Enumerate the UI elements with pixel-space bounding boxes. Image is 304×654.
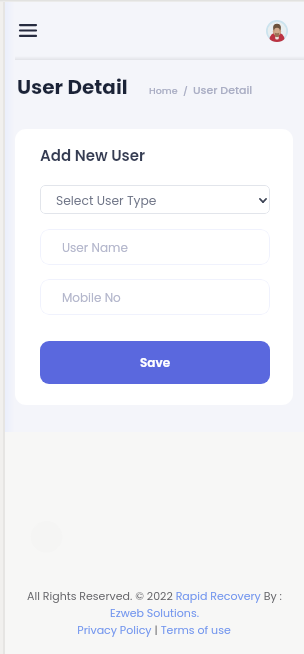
button[interactable]: Open navigation menu	[13, 15, 43, 45]
staticText: Save	[140, 354, 171, 371]
button[interactable]: Ezweb Solutions.	[110, 605, 199, 620]
staticText: User Detail	[17, 73, 128, 101]
button[interactable]: Save	[40, 341, 270, 384]
button[interactable]: User Name	[40, 229, 270, 265]
staticText: User Detail	[193, 82, 253, 97]
button[interactable]: Mobile No	[40, 279, 270, 315]
button[interactable]: Privacy Policy | Terms of use	[77, 622, 231, 637]
staticText: Mobile No	[62, 289, 121, 306]
staticText: Add New User	[40, 145, 146, 166]
staticText: User Name	[62, 239, 128, 256]
staticText: Select User Type	[56, 192, 157, 209]
staticText: All Rights Reserved. © 2022 Rapid Recove…	[27, 588, 282, 603]
staticText: /	[183, 84, 188, 97]
button[interactable]: Select User Type	[40, 185, 270, 214]
button[interactable]: Home	[149, 84, 178, 97]
button[interactable]: Profile	[266, 20, 288, 42]
